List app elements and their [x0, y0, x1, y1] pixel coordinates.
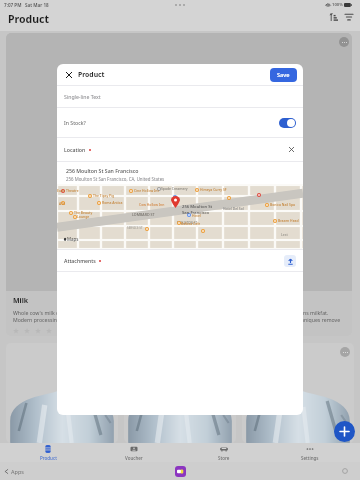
staticText: Cine Hollow Inc — [134, 188, 160, 193]
staticText: Milk — [13, 296, 29, 306]
staticText: Lounge — [77, 214, 90, 219]
staticText: 100% — [332, 2, 343, 8]
staticText: Roma Antica — [102, 200, 123, 205]
staticText: Cow Hollow Inn — [139, 202, 165, 207]
button[interactable]: Settings — [289, 443, 331, 462]
staticText: Hotel — [192, 213, 201, 218]
button[interactable]: Product — [27, 443, 69, 462]
button[interactable]: Clear location — [287, 145, 296, 154]
staticText: Maps — [67, 236, 79, 242]
button[interactable]: More options — [6, 343, 118, 443]
staticText: 256 Moulton St San Francisco — [66, 167, 139, 174]
staticText: The Tipsy Pig — [93, 193, 115, 198]
staticText: SERVICE ST — [127, 226, 143, 230]
staticText: Voucher — [125, 455, 143, 461]
staticText: San Francisco — [182, 210, 210, 216]
button[interactable]: More options — [242, 343, 354, 443]
button[interactable] — [279, 118, 296, 128]
button[interactable]: Upload attachment — [284, 255, 296, 267]
staticText: Settings — [301, 455, 319, 461]
staticText: Single-line Text — [64, 93, 101, 100]
button[interactable]: Save — [270, 68, 297, 82]
staticText: Bonica Nail Spa — [270, 202, 296, 207]
staticText: Brazen Head — [278, 218, 299, 223]
staticText: 256 Moulton St San Francisco, CA, United… — [66, 176, 165, 182]
button[interactable]: Apps — [4, 468, 24, 475]
button[interactable]: Sort — [328, 11, 339, 22]
staticText: Spade Creamery — [161, 186, 188, 191]
staticText: Himeya Curry SF — [200, 187, 227, 192]
staticText: Hotel Del Sol — [223, 206, 244, 211]
staticText: The Beauty — [74, 210, 93, 215]
button[interactable]: Voucher — [113, 443, 155, 462]
staticText: Product — [8, 12, 50, 26]
button[interactable]: Close — [63, 69, 74, 80]
staticText: Product — [40, 455, 57, 461]
staticText: Apps — [11, 468, 24, 475]
staticText: Whole cow's milk contains milkfat. Moder… — [245, 309, 347, 323]
button[interactable]: Filter — [343, 11, 354, 22]
button[interactable]: Add product — [334, 421, 355, 442]
staticText: Store — [218, 455, 230, 461]
staticText: Attachments — [64, 257, 96, 264]
button[interactable]: Milk — [6, 296, 122, 334]
button[interactable]: More options — [340, 347, 350, 357]
staticText: In Stock? — [64, 119, 86, 126]
staticText: Lest — [281, 232, 288, 237]
staticText: MOULTON ST — [177, 221, 198, 225]
staticText: 7:07 PM Sat Mar 18 — [4, 2, 49, 8]
staticText: Location — [64, 146, 86, 153]
button[interactable]: Milk — [238, 296, 354, 334]
button[interactable]: More options — [339, 37, 349, 47]
staticText: LOMBARD ST — [132, 212, 155, 217]
staticText: Save — [277, 71, 290, 79]
staticText: 256 Moulton St — [182, 204, 213, 210]
button[interactable]: More options — [124, 343, 236, 443]
staticText: A16 — [59, 201, 66, 206]
staticText: Whole cow's milk contains milkfat. Moder… — [13, 309, 115, 323]
button[interactable]: Store — [203, 443, 245, 462]
staticText: Product — [78, 70, 105, 79]
button[interactable]: Open app — [175, 466, 186, 477]
staticText: Eudo Theatre — [57, 188, 79, 193]
staticText: Balboa Cafe — [181, 221, 201, 226]
